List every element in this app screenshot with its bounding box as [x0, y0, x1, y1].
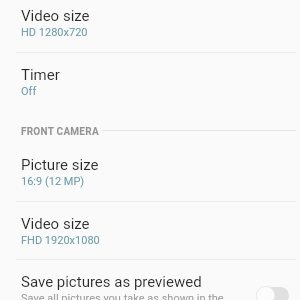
staticText: Video size [21, 215, 90, 233]
staticText: FHD 1920x1080 [21, 234, 100, 247]
staticText: Picture size [21, 156, 99, 174]
staticText: FRONT CAMERA [21, 126, 99, 138]
button[interactable]: Timer [0, 53, 300, 111]
staticText: Video size [21, 7, 90, 25]
staticText: 16:9 (12 MP) [21, 175, 85, 188]
button[interactable]: Picture size [0, 143, 300, 201]
staticText: Off [21, 85, 37, 98]
button[interactable]: Video size [0, 0, 300, 52]
button[interactable]: Video size [0, 202, 300, 260]
staticText: Timer [21, 66, 60, 84]
staticText: HD 1280x720 [21, 26, 88, 39]
button[interactable]: Save pictures as previewed switch [250, 280, 296, 300]
staticText: Save all pictures you take as shown in t… [21, 292, 227, 300]
button[interactable]: Save pictures as previewed [0, 260, 300, 300]
staticText: Save pictures as previewed [21, 273, 202, 291]
